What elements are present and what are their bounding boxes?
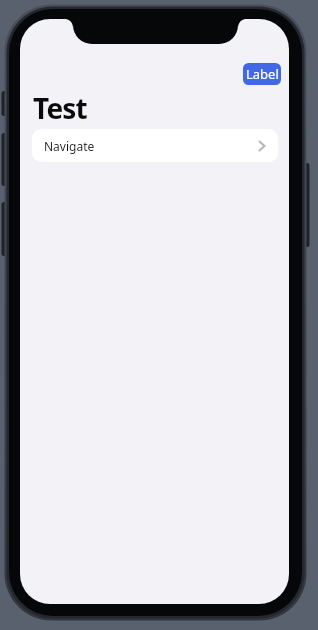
staticText: Label xyxy=(246,65,279,83)
staticText: Test xyxy=(33,89,87,127)
staticText: Navigate xyxy=(44,138,95,154)
button[interactable]: Label xyxy=(243,63,281,85)
button[interactable]: Navigate xyxy=(32,129,278,162)
